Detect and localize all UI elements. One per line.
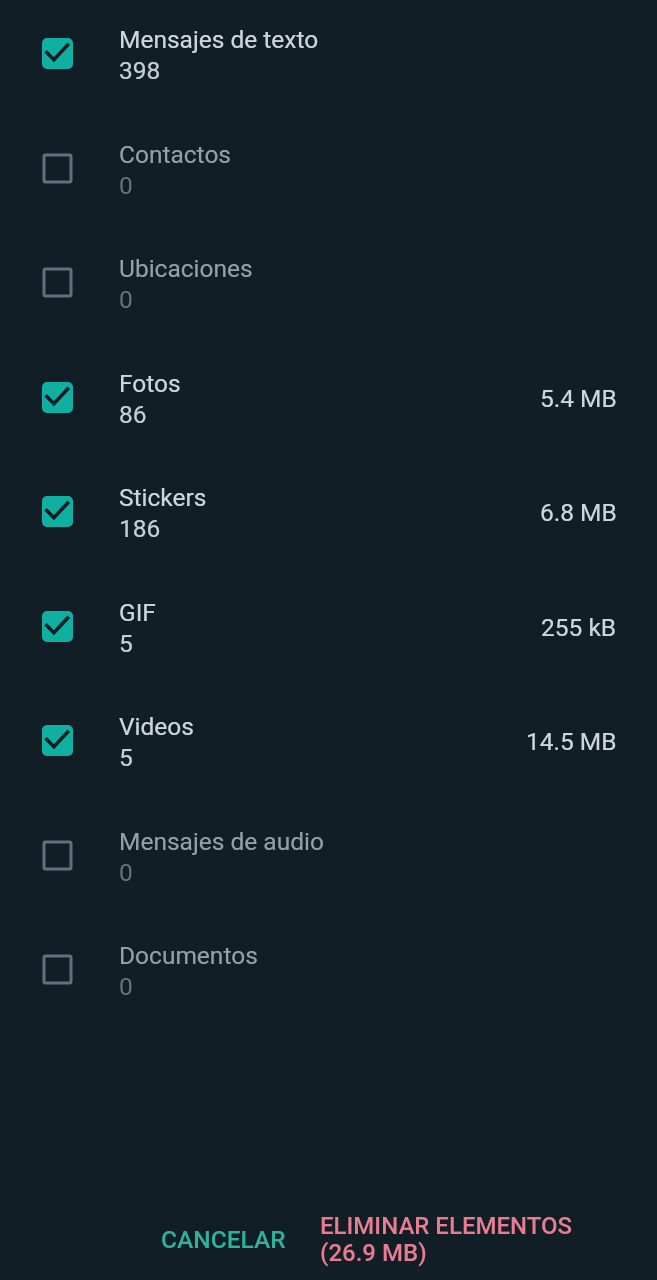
staticText: Mensajes de texto xyxy=(119,25,319,54)
staticText: 0 xyxy=(119,858,133,887)
button[interactable]: Desmarcar Stickers xyxy=(0,474,657,589)
button[interactable]: Desmarcar GIF xyxy=(0,589,657,704)
staticText: 186 xyxy=(119,514,161,543)
button[interactable]: Desmarcar Mensajes de texto xyxy=(42,38,73,69)
staticText: Mensajes de audio xyxy=(119,827,324,856)
button[interactable]: Desmarcar Videos xyxy=(0,703,657,818)
staticText: 5.4 MB xyxy=(540,384,617,413)
button[interactable]: ELIMINAR ELEMENTOS (26.9 MB) xyxy=(304,1200,589,1279)
staticText: 14.5 MB xyxy=(526,727,617,756)
staticText: Videos xyxy=(119,712,194,741)
staticText: 0 xyxy=(119,972,133,1001)
staticText: 0 xyxy=(119,285,133,314)
staticText: 86 xyxy=(119,400,147,429)
button[interactable]: Marcar Mensajes de audio xyxy=(0,818,657,933)
staticText: Ubicaciones xyxy=(119,254,253,283)
staticText: Stickers xyxy=(119,483,207,512)
staticText: GIF xyxy=(119,598,156,627)
staticText: Fotos xyxy=(119,369,181,398)
button[interactable]: Marcar Contactos xyxy=(42,153,73,184)
staticText: ELIMINAR ELEMENTOS (26.9 MB) xyxy=(320,1212,573,1267)
button[interactable]: Desmarcar Videos xyxy=(42,725,73,756)
button[interactable]: Marcar Mensajes de audio xyxy=(42,840,73,871)
staticText: Contactos xyxy=(119,140,232,169)
staticText: Documentos xyxy=(119,941,258,970)
button[interactable]: Marcar Documentos xyxy=(0,932,657,1047)
staticText: 5 xyxy=(119,629,133,658)
button[interactable]: Marcar Ubicaciones xyxy=(42,267,73,298)
staticText: 5 xyxy=(119,743,133,772)
staticText: 398 xyxy=(119,56,161,85)
button[interactable]: Desmarcar Stickers xyxy=(42,496,73,527)
button[interactable]: Desmarcar Mensajes de texto xyxy=(0,16,657,131)
button[interactable]: Marcar Documentos xyxy=(42,954,73,985)
staticText: 6.8 MB xyxy=(540,498,617,527)
button[interactable]: Marcar Ubicaciones xyxy=(0,245,657,360)
staticText: 255 kB xyxy=(541,613,617,642)
button[interactable]: Desmarcar Fotos xyxy=(0,360,657,475)
button[interactable]: Desmarcar Fotos xyxy=(42,382,73,413)
button[interactable]: Desmarcar GIF xyxy=(42,611,73,642)
button[interactable]: Marcar Contactos xyxy=(0,131,657,246)
staticText: 0 xyxy=(119,171,133,200)
button[interactable]: CANCELAR xyxy=(145,1200,302,1253)
staticText: CANCELAR xyxy=(161,1225,286,1254)
